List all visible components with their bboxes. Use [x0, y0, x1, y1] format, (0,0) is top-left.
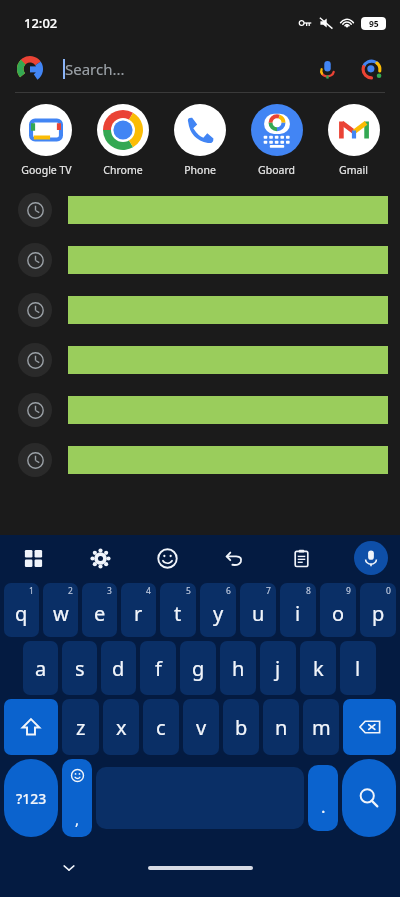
button[interactable] [0, 335, 400, 385]
button[interactable]: d [101, 641, 136, 695]
button[interactable]: b [223, 699, 259, 755]
staticText: 12:02 [24, 14, 58, 32]
button[interactable]: n [263, 699, 299, 755]
button[interactable]: Clipboard [268, 535, 335, 581]
staticText: Phone [184, 163, 216, 177]
staticText: j [275, 655, 281, 682]
staticText: 0 [386, 585, 391, 597]
button[interactable]: Voice input [354, 541, 388, 575]
staticText: Google TV [21, 163, 72, 177]
staticText: u [252, 600, 265, 627]
button[interactable]: Emoji and comma [62, 759, 92, 837]
staticText: Search... [65, 59, 125, 79]
button[interactable]: a [23, 641, 58, 695]
staticText: n [275, 714, 288, 741]
staticText: g [192, 655, 205, 682]
button[interactable]: Apps [0, 535, 67, 581]
staticText: 5 [186, 585, 191, 597]
staticText: 8 [306, 585, 311, 597]
button[interactable]: Backspace [343, 699, 396, 755]
button[interactable]: s [62, 641, 97, 695]
button[interactable]: 9 [320, 583, 356, 637]
button[interactable]: 7 [240, 583, 276, 637]
staticText: x [116, 714, 127, 741]
staticText: d [112, 655, 125, 682]
staticText: t [174, 600, 182, 627]
button[interactable]: 2 [43, 583, 78, 637]
staticText: q [15, 600, 28, 627]
button[interactable]: Undo [201, 535, 268, 581]
button[interactable]: Chrome [84, 104, 161, 177]
button[interactable] [0, 185, 400, 235]
staticText: ?123 [16, 789, 47, 808]
button[interactable]: Settings [67, 535, 134, 581]
staticText: l [355, 655, 361, 682]
staticText: 6 [226, 585, 231, 597]
staticText: Gmail [339, 163, 368, 177]
staticText: 95 [369, 18, 379, 30]
button[interactable]: z [62, 699, 99, 755]
button[interactable]: k [300, 641, 336, 695]
button[interactable]: Search [342, 759, 396, 837]
staticText: o [332, 600, 345, 627]
staticText: y [213, 600, 224, 627]
button[interactable]: 0 [360, 583, 396, 637]
staticText: p [372, 600, 385, 627]
button[interactable]: h [220, 641, 256, 695]
button[interactable]: f [140, 641, 176, 695]
button[interactable]: v [183, 699, 219, 755]
button[interactable]: 3 [82, 583, 117, 637]
button[interactable]: Emoji [134, 535, 201, 581]
staticText: 3 [107, 585, 112, 597]
staticText: a [35, 655, 47, 682]
staticText: w [53, 600, 69, 627]
staticText: i [295, 600, 301, 627]
button[interactable]: m [303, 699, 339, 755]
button[interactable]: x [103, 699, 139, 755]
staticText: c [156, 714, 166, 741]
staticText: Gboard [258, 163, 295, 177]
staticText: 1 [29, 585, 34, 597]
button[interactable]: Voice search [308, 50, 346, 88]
button[interactable]: Search... [0, 46, 400, 92]
button[interactable]: c [143, 699, 179, 755]
button[interactable]: 5 [160, 583, 196, 637]
staticText: . [321, 795, 326, 818]
staticText: r [134, 600, 143, 627]
staticText: e [94, 600, 106, 627]
button[interactable]: ?123 [4, 759, 58, 837]
button[interactable] [0, 235, 400, 285]
staticText: 2 [68, 585, 73, 597]
button[interactable]: 6 [200, 583, 236, 637]
button[interactable]: Gmail [315, 104, 392, 177]
staticText: s [75, 655, 85, 682]
button[interactable] [0, 385, 400, 435]
button[interactable]: 8 [280, 583, 316, 637]
button[interactable]: l [340, 641, 376, 695]
staticText: b [235, 714, 248, 741]
button[interactable]: 1 [4, 583, 39, 637]
button[interactable]: 4 [121, 583, 156, 637]
staticText: v [196, 714, 207, 741]
staticText: h [232, 655, 245, 682]
button[interactable]: j [260, 641, 296, 695]
button[interactable]: Shift [4, 699, 58, 755]
button[interactable]: Hide keyboard [55, 854, 83, 882]
button[interactable] [0, 285, 400, 335]
button[interactable]: Gboard [238, 104, 315, 177]
button[interactable]: Google TV [8, 104, 84, 177]
button[interactable] [0, 435, 400, 485]
staticText: 4 [146, 585, 151, 597]
staticText: k [313, 655, 324, 682]
button[interactable]: Phone [161, 104, 238, 177]
staticText: z [76, 714, 86, 741]
staticText: f [155, 655, 162, 682]
button[interactable]: . [308, 765, 338, 831]
button[interactable]: g [180, 641, 216, 695]
staticText: m [312, 714, 331, 741]
staticText: , [75, 809, 80, 829]
staticText: Chrome [103, 163, 143, 177]
button[interactable]: Google Lens [352, 50, 390, 88]
staticText: 9 [346, 585, 351, 597]
